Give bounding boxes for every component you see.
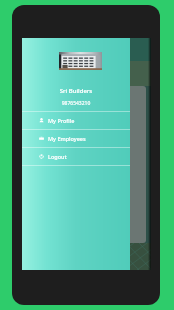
button[interactable]: My Profile (22, 112, 130, 129)
button[interactable]: My Employees (22, 130, 130, 147)
staticText: My Profile (48, 117, 75, 124)
button[interactable]: Add (124, 222, 139, 237)
staticText: 9876543210 (22, 100, 130, 107)
staticText: My Employees (48, 135, 86, 142)
staticText: Logout (48, 153, 67, 160)
button[interactable] (22, 38, 151, 61)
staticText: Sri Builders (22, 87, 130, 95)
button[interactable]: Logout (22, 148, 130, 165)
button[interactable] (112, 86, 146, 243)
